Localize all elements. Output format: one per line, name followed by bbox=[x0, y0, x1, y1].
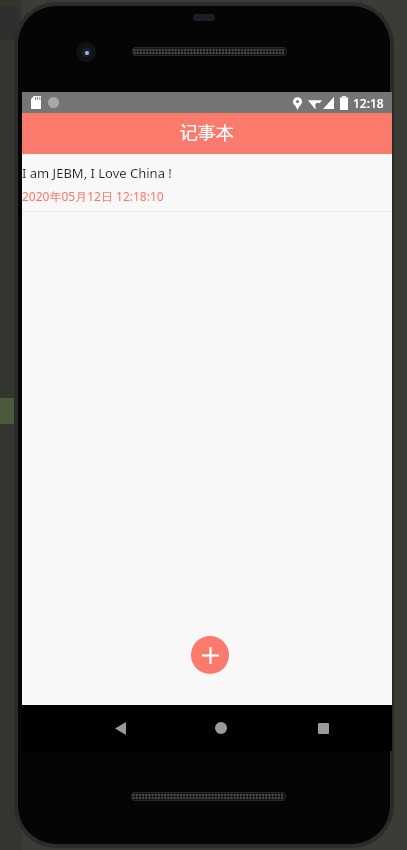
staticText: I am JEBM, I Love China ! bbox=[22, 164, 172, 182]
staticText: 记事本 bbox=[180, 122, 234, 145]
staticText: 12:18 bbox=[353, 95, 384, 111]
button[interactable]: Add note bbox=[191, 636, 229, 674]
staticText: 2020年05月12日 12:18:10 bbox=[22, 188, 164, 204]
button[interactable]: Recents bbox=[297, 705, 349, 751]
button[interactable]: I am JEBM, I Love China ! bbox=[22, 154, 392, 212]
button[interactable]: Home bbox=[195, 705, 247, 751]
button[interactable]: Back bbox=[94, 705, 146, 751]
